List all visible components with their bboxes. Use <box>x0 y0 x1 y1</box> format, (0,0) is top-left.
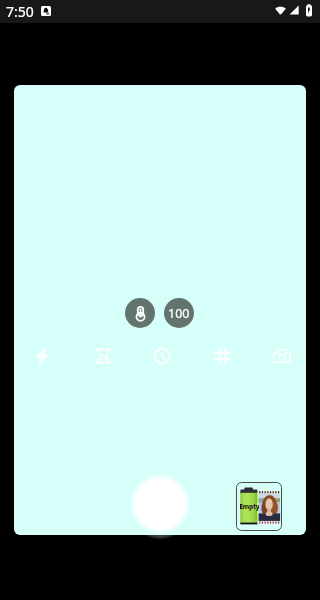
button[interactable]: Aspect ratio 3 to 4 <box>89 342 117 370</box>
staticText: Empty <box>239 502 259 511</box>
button[interactable]: Timer <box>148 342 176 370</box>
button[interactable]: ISO 100 <box>164 298 194 328</box>
button[interactable]: Shutter <box>136 480 184 528</box>
button[interactable]: White balance <box>125 298 155 328</box>
button[interactable]: Flash <box>28 342 56 370</box>
staticText: 100 <box>168 305 190 322</box>
button[interactable]: Switch camera <box>268 342 296 370</box>
staticText: 3:4 <box>97 351 109 362</box>
staticText: 7:50 <box>6 2 34 21</box>
button[interactable]: Last photo <box>236 482 282 531</box>
button[interactable]: Grid <box>208 342 236 370</box>
